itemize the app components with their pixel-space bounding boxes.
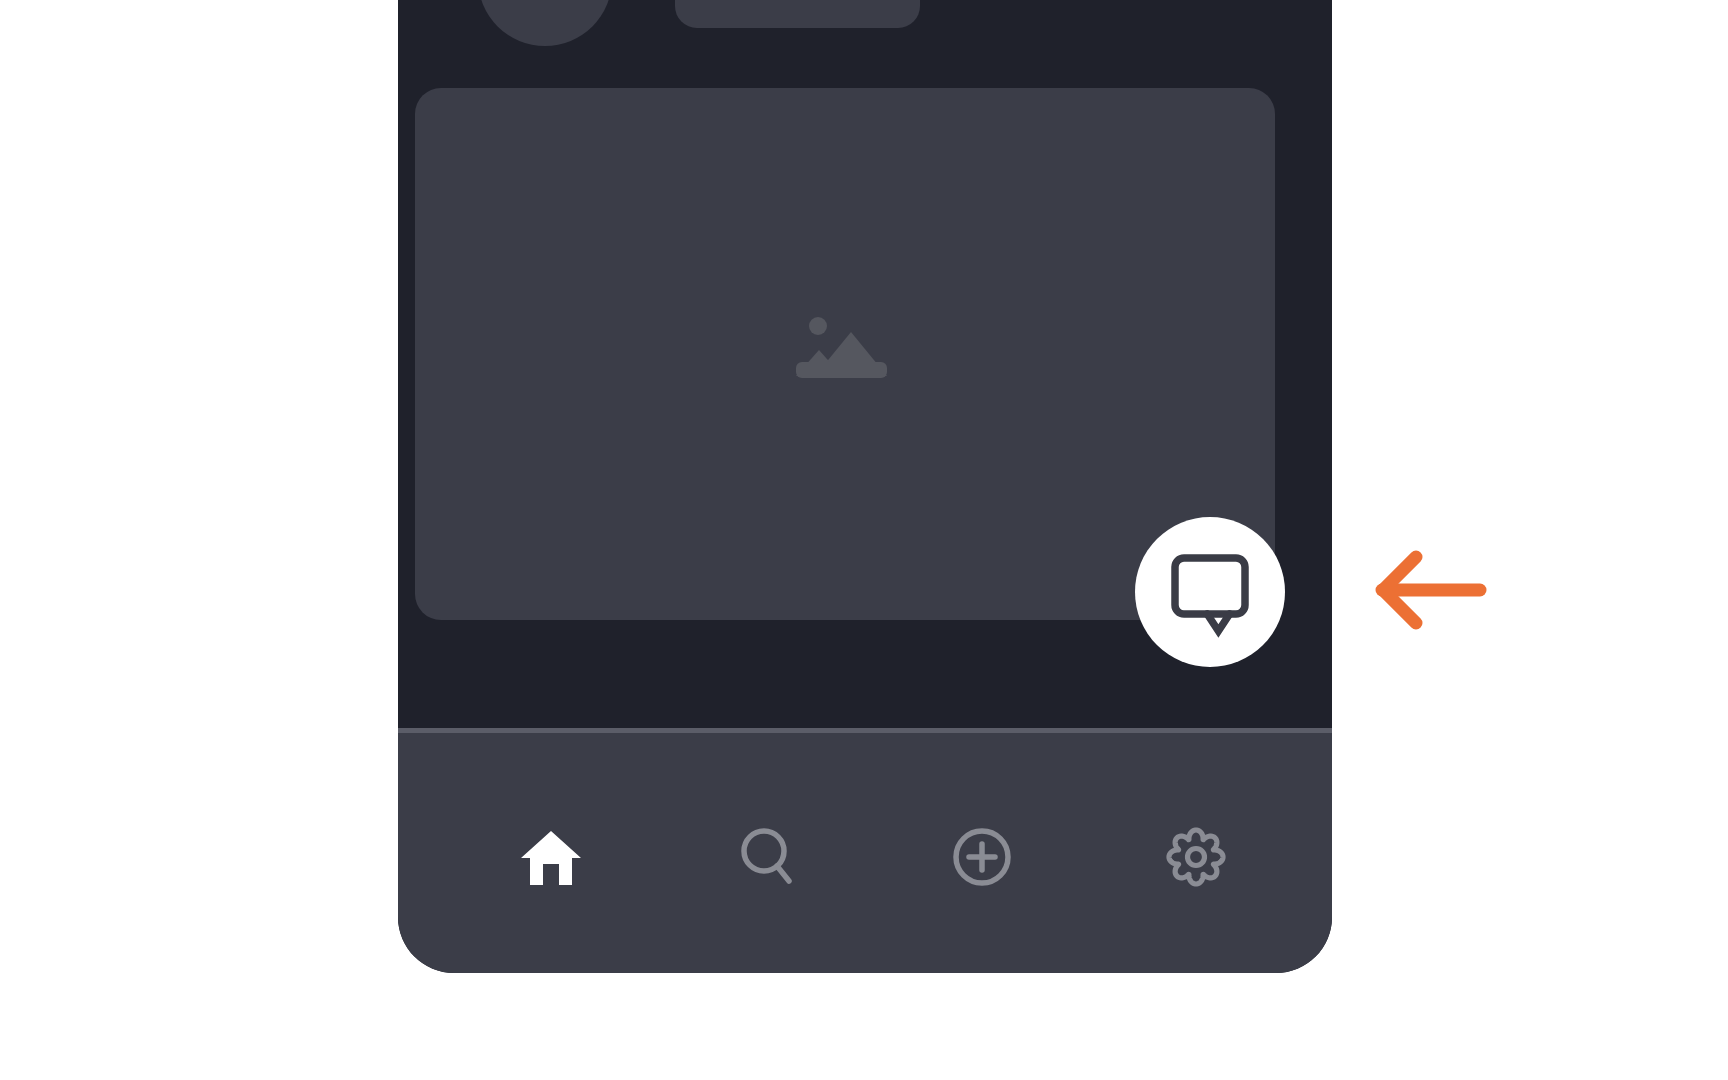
button[interactable]: Photo post — [415, 88, 1275, 620]
button[interactable]: Add new — [907, 782, 1057, 932]
button[interactable]: Profile avatar — [478, 0, 612, 46]
button[interactable]: Settings — [1121, 782, 1271, 932]
button[interactable]: Comment — [1135, 517, 1285, 667]
button[interactable]: Search — [693, 782, 843, 932]
button[interactable]: Home — [476, 782, 626, 932]
